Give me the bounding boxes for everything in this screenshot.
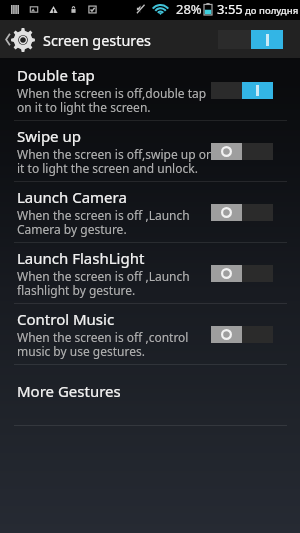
staticText: More Gestures bbox=[17, 381, 121, 401]
staticText: Camera by gesture. bbox=[17, 221, 127, 237]
staticText: on it to light the screen. bbox=[17, 99, 151, 115]
staticText: flashlight by gesture. bbox=[17, 282, 136, 298]
button[interactable]: Launch FlashLight bbox=[0, 243, 300, 303]
staticText: When the screen is off ,control bbox=[17, 329, 189, 345]
staticText: Control Music bbox=[17, 309, 115, 329]
button[interactable]: More Gestures bbox=[0, 365, 300, 425]
staticText: Launch FlashLight bbox=[17, 248, 145, 268]
staticText: Screen gestures bbox=[43, 31, 151, 51]
button[interactable]: Enable screen gestures bbox=[218, 30, 283, 49]
staticText: Swipe up bbox=[17, 126, 81, 146]
staticText: Double tap bbox=[17, 65, 95, 85]
staticText: music by use gestures. bbox=[17, 343, 145, 359]
staticText: Launch Camera bbox=[17, 187, 127, 207]
staticText: When the screen is off ,Launch bbox=[17, 207, 190, 223]
staticText: 28% bbox=[176, 0, 202, 18]
button[interactable]: Launch Camera bbox=[0, 182, 300, 242]
staticText: When the screen is off,double tap bbox=[17, 85, 207, 101]
staticText: до полудня bbox=[245, 4, 299, 17]
staticText: When the screen is off,swipe up on bbox=[17, 146, 214, 162]
staticText: 3:55 bbox=[217, 0, 243, 18]
button[interactable]: Back bbox=[0, 20, 35, 58]
button[interactable]: Swipe up bbox=[0, 121, 300, 181]
button[interactable]: Control Music bbox=[0, 304, 300, 364]
button[interactable]: Double tap bbox=[0, 60, 300, 120]
staticText: it to light the screen and unlock. bbox=[17, 160, 198, 176]
staticText: When the screen is off ,Launch bbox=[17, 268, 190, 284]
